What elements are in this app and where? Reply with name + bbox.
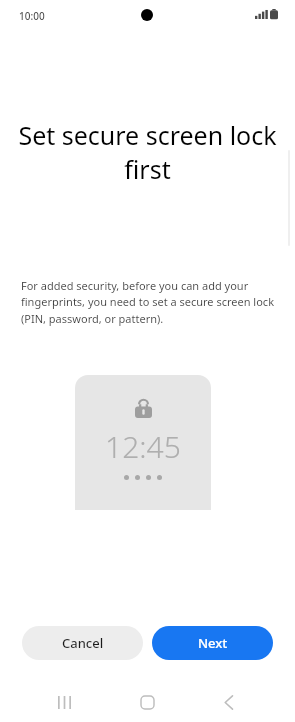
staticText: For added security, before you can add y… bbox=[21, 278, 277, 327]
staticText: 12:45 bbox=[105, 426, 181, 467]
button[interactable]: Cancel bbox=[22, 626, 143, 660]
button[interactable]: Recent apps bbox=[44, 688, 84, 716]
staticText: Cancel bbox=[62, 634, 104, 652]
button[interactable]: Next bbox=[152, 626, 273, 660]
staticText: 10:00 bbox=[19, 9, 45, 23]
button[interactable]: Home bbox=[127, 688, 167, 716]
staticText: Set secure screen lock first bbox=[16, 118, 279, 186]
staticText: Next bbox=[198, 634, 228, 652]
button[interactable]: Back bbox=[209, 688, 249, 716]
